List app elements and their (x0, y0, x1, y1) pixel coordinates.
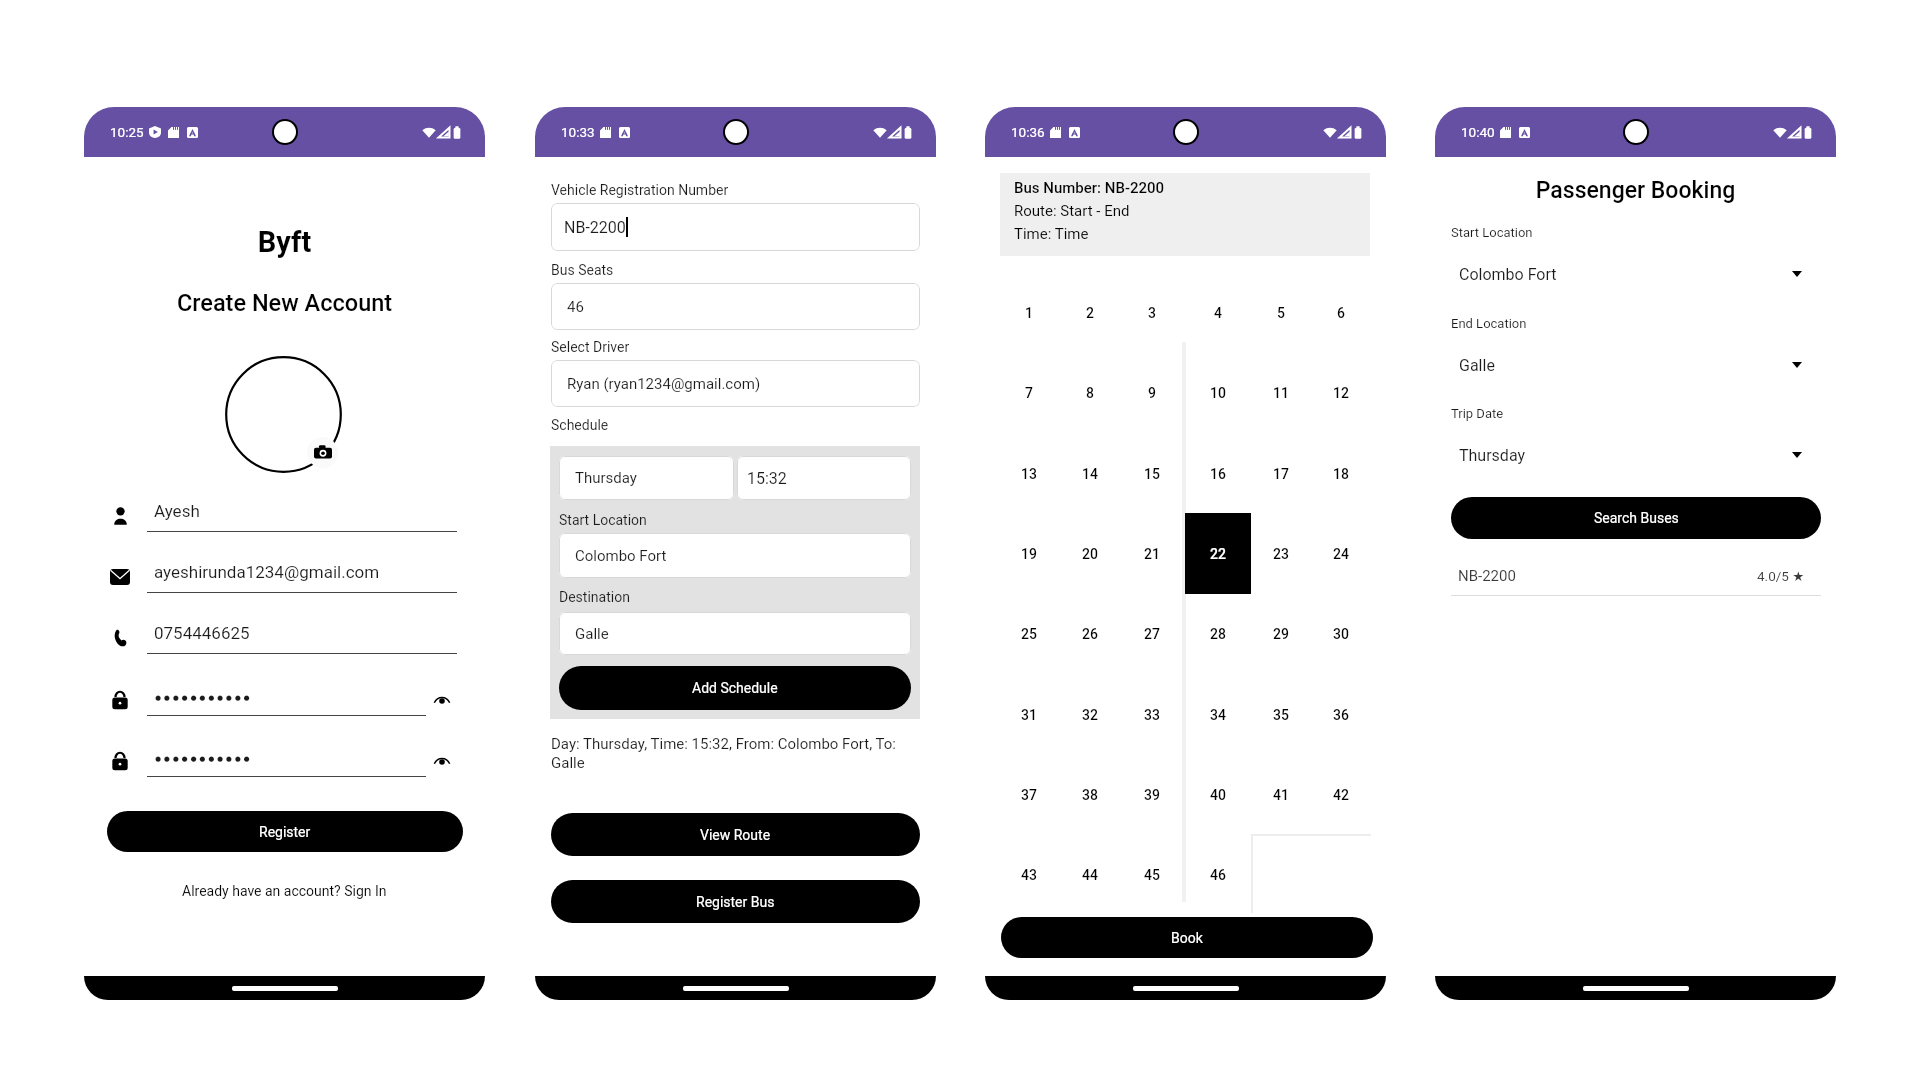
button[interactable]: ●●●●●●●●●●● (84, 684, 485, 726)
button[interactable]: Register Bus (551, 880, 920, 923)
staticText: 23 (1273, 546, 1289, 562)
button[interactable]: 29 (1248, 593, 1314, 674)
button[interactable]: Show password (433, 752, 451, 770)
button[interactable]: 44 (1057, 834, 1123, 915)
button[interactable]: 21 (1119, 513, 1185, 594)
button[interactable]: 2 (1057, 272, 1123, 353)
staticText: NB-2200 (564, 218, 626, 237)
button[interactable]: Book (1001, 917, 1373, 958)
button[interactable]: Ayesh (84, 500, 485, 542)
button[interactable]: 1 (996, 272, 1062, 353)
button[interactable]: 27 (1119, 593, 1185, 674)
staticText: Time: Time (1014, 225, 1089, 243)
staticText: 33 (1144, 707, 1160, 723)
button[interactable]: 28 (1185, 593, 1251, 674)
button[interactable]: 5 (1248, 272, 1314, 353)
button[interactable]: 43 (996, 834, 1062, 915)
button[interactable]: 9 (1119, 352, 1185, 433)
staticText: Trip Date (1451, 406, 1504, 421)
button[interactable]: 19 (996, 513, 1062, 594)
button[interactable]: 14 (1057, 433, 1123, 514)
staticText: 17 (1273, 466, 1289, 482)
button[interactable]: Thursday (559, 456, 734, 500)
staticText: 6 (1337, 305, 1345, 321)
staticText: 21 (1144, 546, 1160, 562)
staticText: 12 (1333, 385, 1349, 401)
button[interactable]: 45 (1119, 834, 1185, 915)
staticText: 27 (1144, 626, 1160, 642)
button[interactable]: View Route (551, 813, 920, 856)
button[interactable]: 46 (1185, 834, 1251, 915)
staticText: End Location (1451, 316, 1527, 331)
staticText: Passenger Booking (1435, 177, 1836, 204)
button[interactable]: 37 (996, 754, 1062, 835)
button[interactable]: Add Schedule (559, 666, 911, 710)
button[interactable]: 11 (1248, 352, 1314, 433)
button[interactable]: ●●●●●●●●●●● (84, 745, 485, 787)
button[interactable]: Colombo Fort (1451, 259, 1821, 289)
button[interactable]: 26 (1057, 593, 1123, 674)
button[interactable]: NB-2200 (1458, 561, 1805, 591)
button[interactable]: 34 (1185, 674, 1251, 755)
button[interactable]: 46 (551, 283, 920, 330)
button[interactable]: Ryan (ryan1234@gmail.com) (551, 360, 920, 407)
button[interactable]: 15 (1119, 433, 1185, 514)
button[interactable]: 13 (996, 433, 1062, 514)
staticText: 1 (1025, 305, 1033, 321)
staticText: Destination (559, 589, 630, 605)
button[interactable]: Galle (1451, 350, 1821, 380)
button[interactable]: 15:32 (737, 456, 911, 500)
staticText: 16 (1210, 466, 1226, 482)
button[interactable]: 25 (996, 593, 1062, 674)
button[interactable]: 12 (1308, 352, 1374, 433)
staticText: Colombo Fort (1459, 265, 1557, 284)
button[interactable]: 8 (1057, 352, 1123, 433)
button[interactable]: 18 (1308, 433, 1374, 514)
staticText: Vehicle Registration Number (551, 182, 729, 198)
button[interactable]: 4 (1185, 272, 1251, 353)
staticText: Ayesh (154, 501, 200, 521)
staticText: Schedule (551, 417, 609, 433)
button[interactable]: 16 (1185, 433, 1251, 514)
staticText: Select Driver (551, 339, 630, 355)
staticText: 10:33 (561, 124, 595, 140)
button[interactable]: Thursday (1451, 440, 1821, 470)
button[interactable]: 41 (1248, 754, 1314, 835)
button[interactable]: Show password (433, 691, 451, 709)
button[interactable]: Galle (559, 612, 911, 655)
staticText: 8 (1086, 385, 1094, 401)
button[interactable]: 0754446625 (84, 622, 485, 664)
button[interactable]: 6 (1308, 272, 1374, 353)
button[interactable]: 7 (996, 352, 1062, 433)
button[interactable]: 20 (1057, 513, 1123, 594)
staticText: 15:32 (747, 469, 787, 488)
button[interactable]: 42 (1308, 754, 1374, 835)
button[interactable]: 17 (1248, 433, 1314, 514)
staticText: 11 (1273, 385, 1289, 401)
button[interactable]: 10 (1185, 352, 1251, 433)
button[interactable]: 39 (1119, 754, 1185, 835)
staticText: 9 (1148, 385, 1156, 401)
button[interactable]: 3 (1119, 272, 1185, 353)
button[interactable]: Already have an account? Sign In (176, 881, 393, 901)
button[interactable]: ayeshirunda1234@gmail.com (84, 561, 485, 603)
staticText: 29 (1273, 626, 1289, 642)
button[interactable]: 35 (1248, 674, 1314, 755)
button[interactable]: 33 (1119, 674, 1185, 755)
button[interactable]: 36 (1308, 674, 1374, 755)
button[interactable]: 31 (996, 674, 1062, 755)
staticText: Colombo Fort (575, 547, 667, 565)
button[interactable]: Search Buses (1451, 497, 1821, 539)
button[interactable]: 32 (1057, 674, 1123, 755)
button[interactable]: 22 (1185, 513, 1251, 594)
button[interactable]: NB-2200 (551, 203, 920, 251)
button[interactable]: 40 (1185, 754, 1251, 835)
button[interactable]: Colombo Fort (559, 533, 911, 578)
button[interactable]: 24 (1308, 513, 1374, 594)
button[interactable]: 30 (1308, 593, 1374, 674)
button[interactable]: Change profile photo (307, 437, 338, 468)
button[interactable]: 38 (1057, 754, 1123, 835)
staticText: Route: Start - End (1014, 202, 1130, 220)
button[interactable]: Register (107, 811, 463, 852)
button[interactable]: 23 (1248, 513, 1314, 594)
